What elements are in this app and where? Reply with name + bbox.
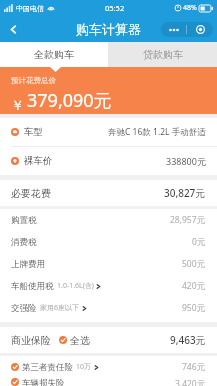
button[interactable]: Back	[0, 16, 26, 42]
button[interactable]: 裸车价	[0, 147, 217, 175]
staticText: 购置税	[11, 215, 37, 226]
button[interactable]: 商业保险	[0, 327, 217, 353]
button[interactable]: 车船使用税	[0, 275, 217, 297]
staticText: 车船使用税	[11, 281, 54, 292]
button[interactable]: 车辆损失险	[0, 378, 217, 386]
button[interactable]: 交强险	[0, 297, 217, 319]
staticText: 500元	[182, 258, 206, 270]
staticText: 746元	[182, 361, 206, 373]
button[interactable]: Target	[187, 22, 213, 37]
button[interactable]: More	[161, 22, 186, 37]
button[interactable]: 必要花费	[0, 180, 217, 206]
button[interactable]: 车型	[0, 118, 217, 146]
staticText: 购车计算器	[76, 21, 141, 37]
staticText: 950元	[182, 302, 206, 314]
staticText: 必要花费	[11, 187, 51, 200]
staticText: 338800元	[166, 155, 206, 167]
staticText: 0元	[192, 236, 206, 248]
staticText: 上牌费用	[11, 259, 45, 270]
staticText: 379,090元	[27, 88, 112, 113]
button[interactable]: 全款购车	[0, 42, 108, 67]
staticText: 消费税	[11, 237, 37, 248]
staticText: 10万	[76, 362, 92, 372]
staticText: 贷款购车	[143, 48, 183, 61]
staticText: 中国电信	[16, 4, 44, 13]
staticText: 车型	[24, 126, 43, 138]
staticText: 全款购车	[34, 48, 74, 61]
staticText: 1.0-1.6L(含)	[57, 281, 94, 291]
button[interactable]: 第三者责任险	[0, 356, 217, 378]
staticText: 预计花费总价	[11, 76, 56, 85]
staticText: 第三者责任险	[22, 362, 73, 373]
staticText: 商业保险	[11, 334, 51, 347]
staticText: 裸车价	[24, 155, 53, 167]
staticText: 420元	[182, 280, 206, 292]
staticText: 3,420元	[175, 378, 206, 386]
staticText: 30,827元	[164, 186, 206, 200]
staticText: 05:52	[105, 3, 125, 13]
staticText: ￥	[11, 97, 24, 113]
staticText: 48%	[183, 3, 197, 13]
staticText: 28,957元	[170, 214, 206, 226]
staticText: 奔驰C 16款 1.2L 手动舒适	[108, 126, 206, 138]
button[interactable]: 消费税	[0, 231, 217, 253]
staticText: 交强险	[11, 303, 37, 314]
staticText: 9,463元	[170, 333, 206, 347]
staticText: 全选	[70, 334, 90, 347]
staticText: 车辆损失险	[22, 378, 65, 386]
button[interactable]: 上牌费用	[0, 253, 217, 275]
staticText: 家用6座以下	[40, 303, 80, 313]
button[interactable]: 购置税	[0, 209, 217, 231]
button[interactable]: 贷款购车	[108, 42, 217, 67]
